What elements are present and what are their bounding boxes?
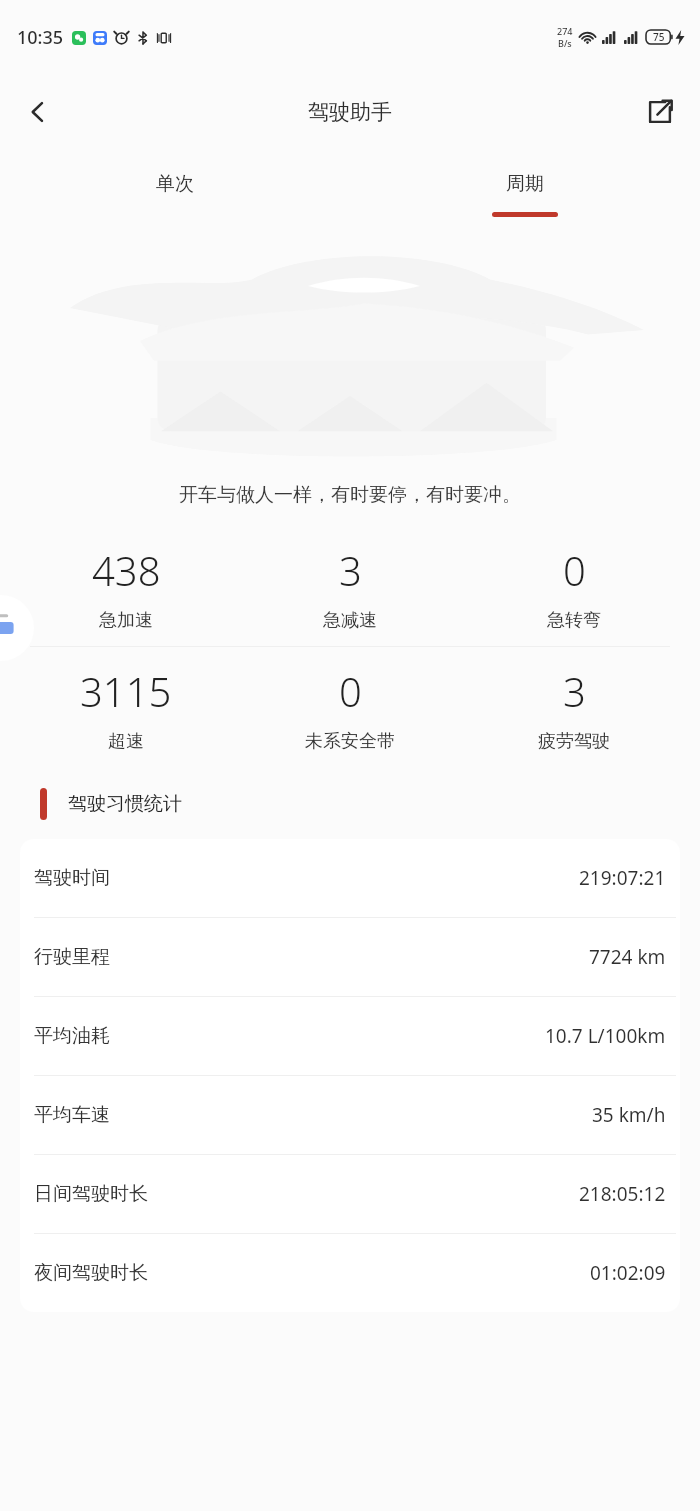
staticText: 未系安全带: [305, 730, 395, 753]
button[interactable]: 平均车速: [20, 1076, 680, 1154]
button[interactable]: 夜间驾驶时长: [20, 1234, 680, 1312]
button[interactable]: 3: [238, 528, 462, 646]
staticText: 驾驶助手: [308, 99, 392, 125]
staticText: B/s: [558, 37, 572, 49]
staticText: 438: [92, 543, 161, 597]
staticText: 日间驾驶时长: [34, 1182, 148, 1206]
staticText: 急转弯: [547, 609, 601, 632]
staticText: 驾驶时间: [34, 866, 110, 890]
staticText: 夜间驾驶时长: [34, 1261, 148, 1285]
button[interactable]: 0: [238, 647, 462, 769]
staticText: 01:02:09: [590, 1260, 666, 1286]
button[interactable]: 3115: [14, 647, 238, 769]
button[interactable]: 周期: [350, 150, 700, 242]
button[interactable]: 平均油耗: [20, 997, 680, 1075]
staticText: 急减速: [323, 609, 377, 632]
staticText: 平均油耗: [34, 1024, 110, 1048]
button[interactable]: 返回: [10, 84, 66, 140]
staticText: 3: [339, 543, 362, 597]
staticText: 75: [653, 30, 665, 44]
staticText: 单次: [156, 172, 194, 196]
staticText: 10:35: [17, 25, 64, 50]
staticText: 疲劳驾驶: [538, 730, 610, 753]
staticText: 3: [563, 664, 586, 718]
staticText: 7724 km: [589, 944, 666, 970]
staticText: 10.7 L/100km: [545, 1023, 666, 1049]
button[interactable]: 0: [462, 528, 686, 646]
button[interactable]: 438: [14, 528, 238, 646]
staticText: 219:07:21: [579, 865, 666, 891]
button[interactable]: 3: [462, 647, 686, 769]
button[interactable]: 悬浮窗: [0, 595, 34, 661]
staticText: 35 km/h: [592, 1102, 666, 1128]
staticText: 3115: [80, 664, 172, 718]
button[interactable]: 分享: [632, 84, 688, 140]
staticText: 0: [563, 543, 586, 597]
button[interactable]: 日间驾驶时长: [20, 1155, 680, 1233]
staticText: 开车与做人一样，有时要停，有时要冲。: [179, 483, 521, 507]
button[interactable]: 单次: [0, 150, 350, 242]
staticText: 218:05:12: [579, 1181, 666, 1207]
staticText: 平均车速: [34, 1103, 110, 1127]
staticText: 274: [557, 25, 573, 37]
button[interactable]: 行驶里程: [20, 918, 680, 996]
staticText: 周期: [506, 172, 544, 196]
staticText: 行驶里程: [34, 945, 110, 969]
staticText: 驾驶习惯统计: [68, 792, 182, 816]
staticText: 超速: [108, 730, 144, 753]
button[interactable]: 驾驶时间: [20, 839, 680, 917]
staticText: 0: [339, 664, 362, 718]
staticText: 急加速: [99, 609, 153, 632]
